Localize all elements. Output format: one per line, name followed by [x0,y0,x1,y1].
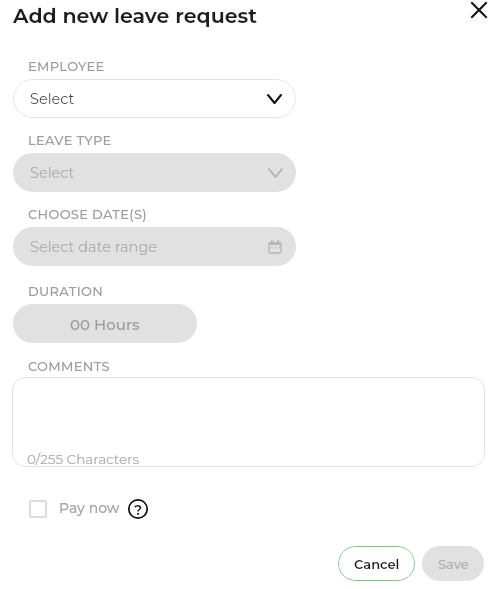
staticText: Pay now [59,499,120,516]
staticText: Add new leave request [13,3,258,28]
staticText: 00 Hours [70,315,140,333]
staticText: Save [438,556,469,572]
staticText: EMPLOYEE [28,58,105,74]
staticText: 0/255 Characters [27,451,140,467]
staticText: COMMENTS [28,358,110,374]
other: Help [128,499,148,519]
button[interactable]: Select date range [13,227,296,266]
button[interactable]: Pay now [29,498,148,520]
staticText: Select date range [30,238,158,256]
staticText: CHOOSE DATE(S) [28,206,148,222]
staticText: LEAVE TYPE [28,132,112,148]
button[interactable]: Save [422,546,484,581]
button[interactable]: Cancel [338,546,415,581]
staticText: Cancel [354,556,400,572]
staticText: ? [134,501,143,518]
staticText: DURATION [28,283,104,299]
button[interactable]: Close [467,0,491,22]
staticText: Select [30,90,75,108]
staticText: Select [30,164,75,182]
button[interactable]: 0/255 Characters [12,377,485,467]
button[interactable]: Select [13,79,296,118]
button[interactable]: Select [13,153,296,192]
